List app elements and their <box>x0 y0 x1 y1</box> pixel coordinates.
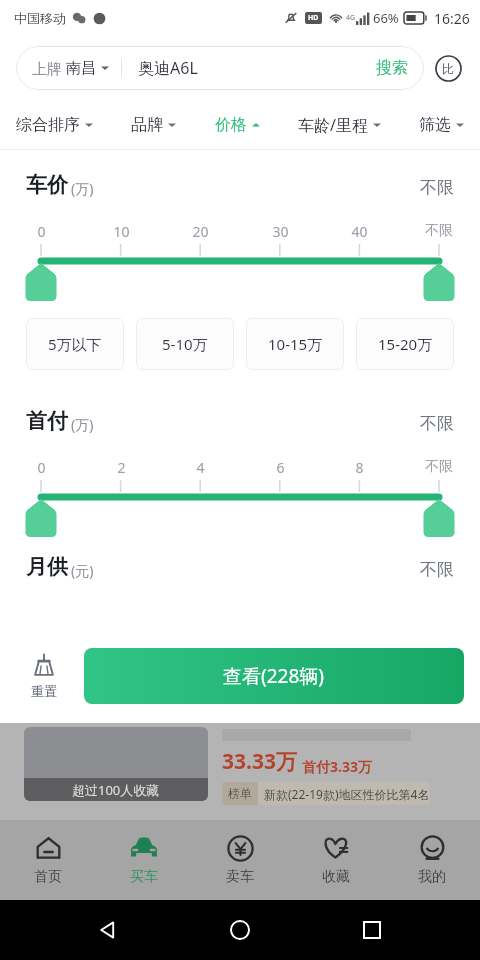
staticText: 我的 <box>418 868 446 886</box>
staticText: 中国移动 <box>14 10 66 26</box>
button[interactable]: 我的 <box>384 820 480 900</box>
staticText: 月供 <box>26 554 68 580</box>
staticText: 筛选 <box>419 115 451 135</box>
staticText: 奥迪A6L <box>138 57 198 79</box>
staticText: 收藏 <box>322 868 350 886</box>
button[interactable]: 筛选 <box>419 107 464 143</box>
button[interactable]: 搜索 <box>360 46 424 90</box>
staticText: 重置 <box>31 683 57 699</box>
staticText: 10 <box>113 222 130 241</box>
button[interactable]: 买车 <box>96 820 192 900</box>
staticText: 10-15万 <box>268 334 323 354</box>
staticText: 价格 <box>215 115 247 135</box>
staticText: 车价 <box>26 172 68 198</box>
button[interactable]: 10-15万 <box>246 318 344 370</box>
button[interactable]: 奥迪A6L <box>122 46 360 90</box>
staticText: 首付 <box>26 408 68 434</box>
staticText: 卖车 <box>226 868 254 886</box>
staticText: 搜索 <box>376 58 408 78</box>
button[interactable]: 上牌 <box>16 58 121 78</box>
staticText: 首付3.33万 <box>302 757 372 776</box>
staticText: 南昌 <box>66 59 96 78</box>
staticText: 不限 <box>420 177 454 198</box>
staticText: 不限 <box>420 559 454 580</box>
staticText: 5万以下 <box>48 334 102 354</box>
staticText: 车龄/里程 <box>298 114 368 136</box>
staticText: 查看(228辆) <box>223 663 325 689</box>
staticText: 新款(22-19款)地区性价比第4名 <box>264 786 430 802</box>
staticText: 4G <box>346 13 356 23</box>
button[interactable]: 查看(228辆) <box>84 648 464 704</box>
staticText: 买车 <box>130 868 158 886</box>
staticText: (元) <box>71 561 94 580</box>
staticText: 0 <box>37 458 46 477</box>
staticText: 30 <box>272 222 289 241</box>
button[interactable]: Recents <box>348 906 396 954</box>
button[interactable]: 车龄/里程 <box>298 106 381 144</box>
staticText: 不限 <box>420 413 454 434</box>
staticText: 4 <box>196 458 205 477</box>
staticText: 0 <box>37 222 46 241</box>
staticText: 品牌 <box>131 115 163 135</box>
staticText: 15-20万 <box>378 334 433 354</box>
button[interactable]: 卖车 <box>192 820 288 900</box>
button[interactable]: Home <box>216 906 264 954</box>
button[interactable]: 收藏 <box>288 820 384 900</box>
button[interactable]: 重置 <box>10 653 78 699</box>
button[interactable]: 对比 <box>424 44 472 92</box>
button[interactable]: 5万以下 <box>26 318 124 370</box>
staticText: 40 <box>351 222 368 241</box>
staticText: 上牌 <box>32 58 66 78</box>
button[interactable]: 价格 <box>215 107 260 143</box>
staticText: 比 <box>442 61 454 76</box>
button[interactable]: 首页 <box>0 820 96 900</box>
staticText: 超过100人收藏 <box>72 781 160 799</box>
staticText: (万) <box>71 179 94 198</box>
staticText: 综合排序 <box>16 115 80 135</box>
button[interactable]: Back <box>84 906 132 954</box>
staticText: 33.33万 <box>222 747 297 776</box>
staticText: 5-10万 <box>162 334 208 354</box>
button[interactable]: 品牌 <box>131 107 176 143</box>
button[interactable]: 15-20万 <box>356 318 454 370</box>
staticText: 不限 <box>425 458 453 476</box>
staticText: 66% <box>373 9 399 27</box>
button[interactable]: 综合排序 <box>16 107 93 143</box>
staticText: 6 <box>276 458 285 477</box>
staticText: 8 <box>355 458 364 477</box>
staticText: (万) <box>71 415 94 434</box>
staticText: HD <box>308 13 319 23</box>
staticText: 2 <box>117 458 126 477</box>
staticText: 20 <box>192 222 209 241</box>
staticText: 榜单 <box>228 786 252 801</box>
button[interactable]: 5-10万 <box>136 318 234 370</box>
staticText: 首页 <box>34 868 62 886</box>
staticText: 不限 <box>425 222 453 240</box>
staticText: 16:26 <box>434 9 470 28</box>
